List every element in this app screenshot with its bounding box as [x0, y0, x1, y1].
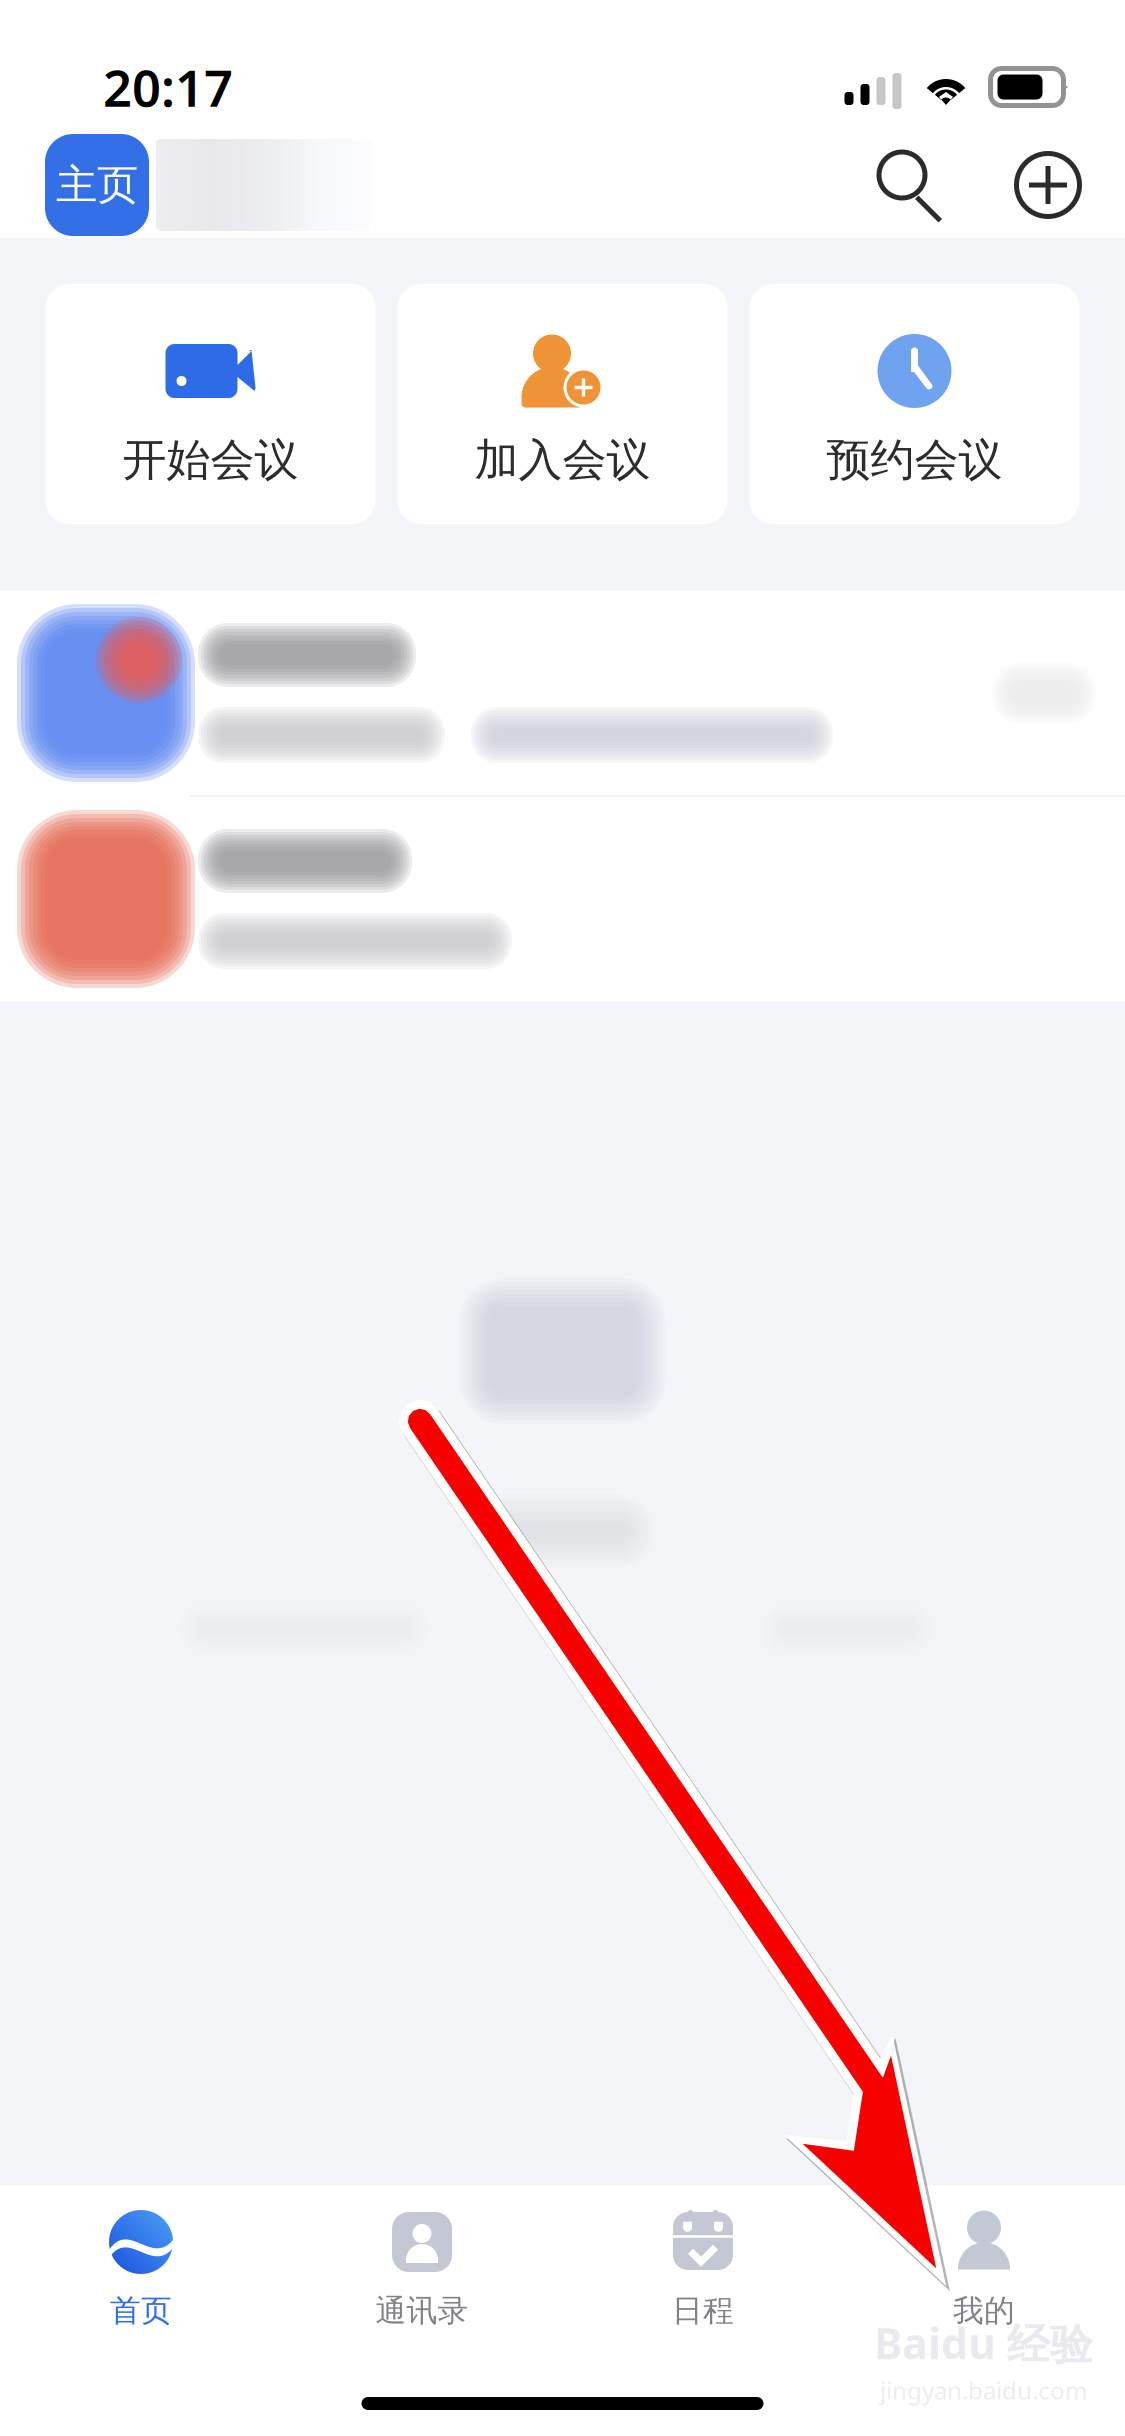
button[interactable]: 通讯录: [281, 2185, 562, 2353]
staticText: 主页: [56, 160, 138, 210]
staticText: 预约会议: [826, 433, 1002, 487]
button[interactable]: 首页: [0, 2185, 281, 2353]
button[interactable]: 新建会议: [1000, 132, 1096, 238]
button[interactable]: 我的: [843, 2185, 1124, 2353]
staticText: 开始会议: [122, 433, 298, 487]
button[interactable]: 预约会议: [749, 284, 1079, 524]
button[interactable]: [0, 797, 1125, 1001]
staticText: 日程: [672, 2292, 734, 2330]
button[interactable]: [0, 591, 1125, 795]
button[interactable]: 开始会议: [45, 284, 375, 524]
button[interactable]: 主页: [45, 134, 149, 236]
staticText: 首页: [110, 2292, 172, 2330]
staticText: 20:17: [103, 53, 233, 121]
button[interactable]: 搜索: [861, 132, 961, 238]
staticText: Baidu 经验: [874, 2314, 1093, 2371]
staticText: 通讯录: [375, 2292, 468, 2330]
staticText: 加入会议: [474, 433, 650, 487]
button[interactable]: 加入会议: [397, 284, 727, 524]
button[interactable]: 日程: [562, 2185, 843, 2353]
staticText: 我的: [953, 2292, 1015, 2330]
staticText: jingyan.baidu.com: [880, 2374, 1087, 2406]
